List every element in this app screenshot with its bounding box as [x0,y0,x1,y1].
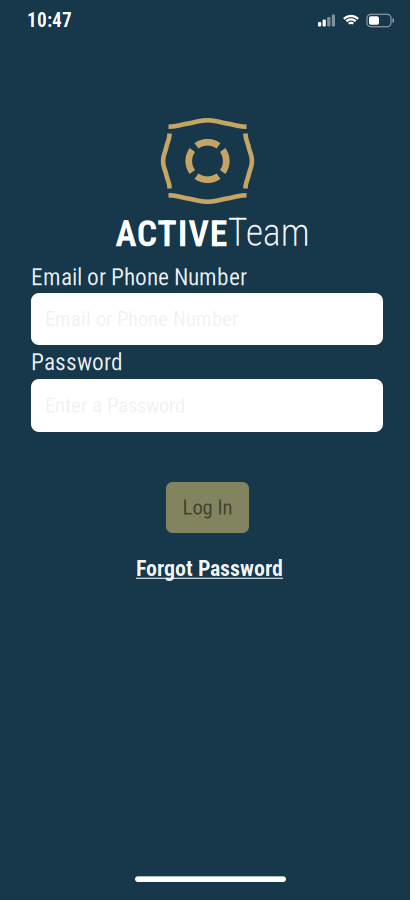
button[interactable]: Forgot Password [136,556,283,581]
staticText: Log In [182,495,232,520]
staticText: Password [31,349,123,376]
button[interactable]: Log In [166,482,249,533]
staticText: Enter a Password [45,393,185,418]
staticText: Forgot Password [136,556,283,581]
staticText: 10:47 [27,9,72,32]
button[interactable]: Enter a Password [31,379,383,432]
staticText: Team [228,210,310,255]
staticText: Email or Phone Number [45,307,238,331]
staticText: ACTIVE [115,213,228,255]
staticText: Email or Phone Number [31,263,247,291]
button[interactable]: Email or Phone Number [31,293,383,345]
